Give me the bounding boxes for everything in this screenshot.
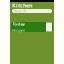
staticText: Search xyxy=(14,8,26,14)
staticText: Recipes xyxy=(12,27,25,33)
staticText: Today xyxy=(12,21,24,26)
staticText: Kitchen xyxy=(12,2,32,9)
